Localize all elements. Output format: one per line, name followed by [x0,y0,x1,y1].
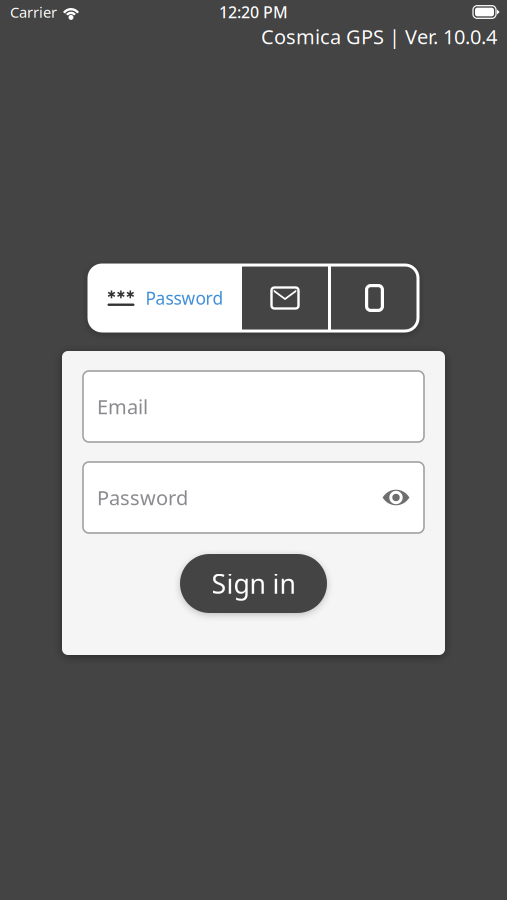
button[interactable]: Email [83,371,424,442]
staticText: 12:20 PM [219,1,288,23]
staticText: Password [145,286,223,309]
button[interactable]: Sign in with phone [331,265,418,331]
staticText: Email [97,393,148,420]
button[interactable]: Sign in [180,554,327,613]
button[interactable]: Password [83,462,424,533]
staticText: Carrier [10,2,57,22]
button[interactable]: Sign in with email [242,265,328,331]
staticText: Sign in [211,566,295,601]
staticText: Password [97,484,188,511]
button[interactable]: Show password [372,481,410,513]
staticText: Cosmica GPS | Ver. 10.0.4 [261,23,497,50]
button[interactable]: Password [89,265,242,331]
